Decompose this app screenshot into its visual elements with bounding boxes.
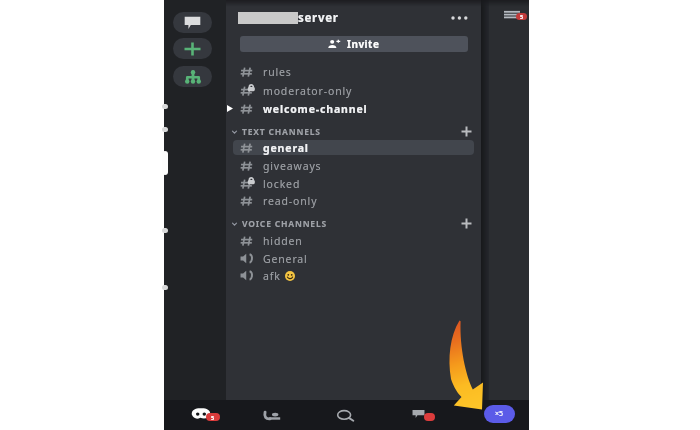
button[interactable]: locked	[233, 176, 474, 191]
staticText: 5	[520, 13, 524, 20]
button[interactable]: Invite	[240, 36, 468, 52]
staticText: welcome-channel	[263, 102, 368, 116]
staticText: server	[298, 10, 339, 26]
button[interactable]: rules	[233, 64, 474, 79]
staticText: General	[263, 252, 308, 266]
staticText: giveaways	[263, 159, 322, 173]
staticText: TEXT CHANNELS	[242, 126, 321, 138]
button[interactable]: General	[233, 251, 474, 266]
staticText: Invite	[347, 37, 380, 51]
staticText: hidden	[263, 234, 303, 248]
staticText: VOICE CHANNELS	[242, 218, 327, 230]
button[interactable]: general	[233, 140, 474, 155]
button[interactable]: TEXT CHANNELS	[231, 124, 474, 139]
button[interactable]: Home	[180, 400, 222, 430]
button[interactable]: Friends	[252, 400, 294, 430]
button[interactable]: Profile	[484, 405, 515, 423]
button[interactable]: welcome-channel	[233, 101, 474, 116]
button[interactable]: Create channel	[458, 124, 474, 139]
button[interactable]: Server	[173, 66, 212, 87]
button[interactable]: read-only	[233, 193, 474, 208]
button[interactable]: afk	[233, 268, 474, 283]
staticText: moderator-only	[263, 84, 353, 98]
staticText: general	[263, 141, 309, 155]
staticText: ×5	[495, 409, 504, 419]
button[interactable]: Server	[173, 12, 212, 33]
staticText: afk	[263, 269, 281, 283]
button[interactable]: moderator-only	[233, 83, 474, 98]
button[interactable]: hidden	[233, 233, 474, 248]
staticText: rules	[263, 65, 292, 79]
button[interactable]: More options	[448, 8, 470, 28]
staticText: 5	[211, 414, 215, 421]
button[interactable]: server	[238, 6, 474, 30]
button[interactable]: Open menu	[500, 7, 524, 22]
button[interactable]: Messages	[399, 400, 441, 430]
button[interactable]: Search	[324, 400, 366, 430]
button[interactable]: Create channel	[458, 216, 474, 231]
button[interactable]: giveaways	[233, 158, 474, 173]
button[interactable]: Server	[173, 38, 212, 59]
button[interactable]: VOICE CHANNELS	[231, 216, 474, 231]
staticText: locked	[263, 177, 301, 191]
staticText: read-only	[263, 194, 318, 208]
